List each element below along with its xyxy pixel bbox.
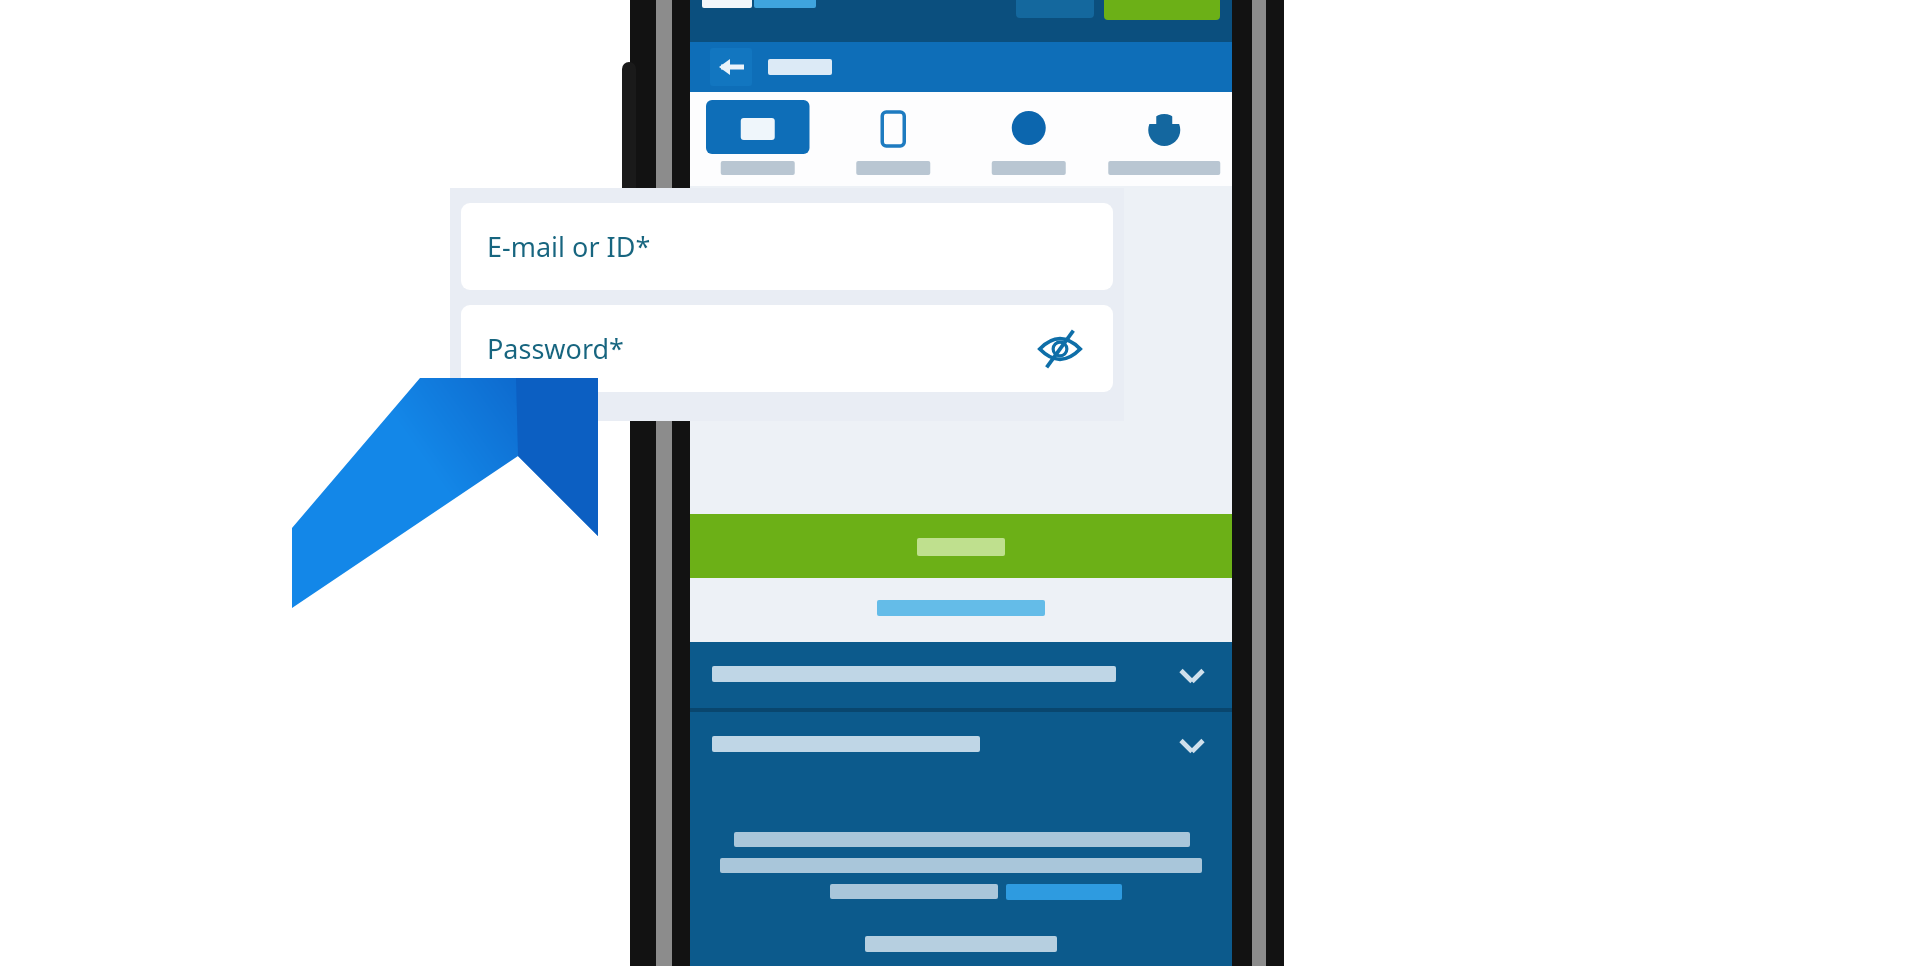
button[interactable]: E-mail or ID* <box>461 203 1113 290</box>
button[interactable]: Password* <box>461 305 1113 392</box>
staticText: E-mail or ID* <box>487 228 651 265</box>
staticText: Password* <box>487 330 624 367</box>
button[interactable]: Show password <box>1031 320 1089 378</box>
